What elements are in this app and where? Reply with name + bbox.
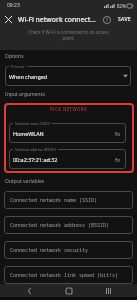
button[interactable]: Back [19, 284, 39, 297]
button[interactable]: Home [59, 284, 79, 297]
staticText: PICK NETWORK [50, 106, 88, 112]
button[interactable]: 00:a2:37:21:ad:32 [9, 149, 126, 169]
button[interactable]: PICK NETWORK [42, 103, 96, 115]
staticText: Proceed [11, 64, 25, 69]
staticText: 00:a2:37:21:ad:32 [13, 156, 58, 163]
button[interactable]: Close [0, 11, 17, 28]
button[interactable]: Insert variable [112, 128, 123, 139]
staticText: Wi-Fi network connect... [18, 15, 96, 24]
button[interactable]: When changed [5, 66, 131, 86]
button[interactable]: Recents [98, 284, 118, 297]
staticText: Connected network security [10, 247, 89, 254]
staticText: HomeWLAN [13, 130, 44, 137]
staticText: 82% [117, 3, 126, 9]
staticText: fx [115, 156, 121, 164]
staticText: Options [5, 53, 24, 60]
staticText: When changed [9, 73, 48, 80]
staticText: Input arguments [5, 91, 45, 98]
staticText: 09:23 [7, 2, 20, 9]
button[interactable]: Connected network name (SSID) [4, 191, 133, 209]
staticText: Connected network address (BSSID) [10, 222, 110, 229]
staticText: Connected network name (SSID) [10, 197, 98, 204]
staticText: fx [115, 130, 121, 138]
staticText: Connected network link speed (bit/s) [10, 272, 119, 279]
button[interactable]: Connected network link speed (bit/s) [4, 266, 133, 284]
staticText: Network name (SSID) [15, 121, 50, 126]
button[interactable]: Connected network address (BSSID) [4, 216, 133, 234]
button[interactable]: Connected network security [4, 241, 133, 259]
staticText: Network address (BSSID) [15, 147, 56, 152]
staticText: Check if Wi-Fi is connected to an access… [27, 29, 110, 41]
staticText: Output variables [5, 178, 45, 185]
staticText: ? [106, 17, 108, 23]
button[interactable]: HomeWLAN [9, 123, 126, 143]
button[interactable]: Insert variable [112, 154, 123, 165]
staticText: SAVE [118, 16, 131, 23]
button[interactable]: Help [99, 12, 114, 27]
button[interactable]: SAVE [114, 16, 135, 23]
